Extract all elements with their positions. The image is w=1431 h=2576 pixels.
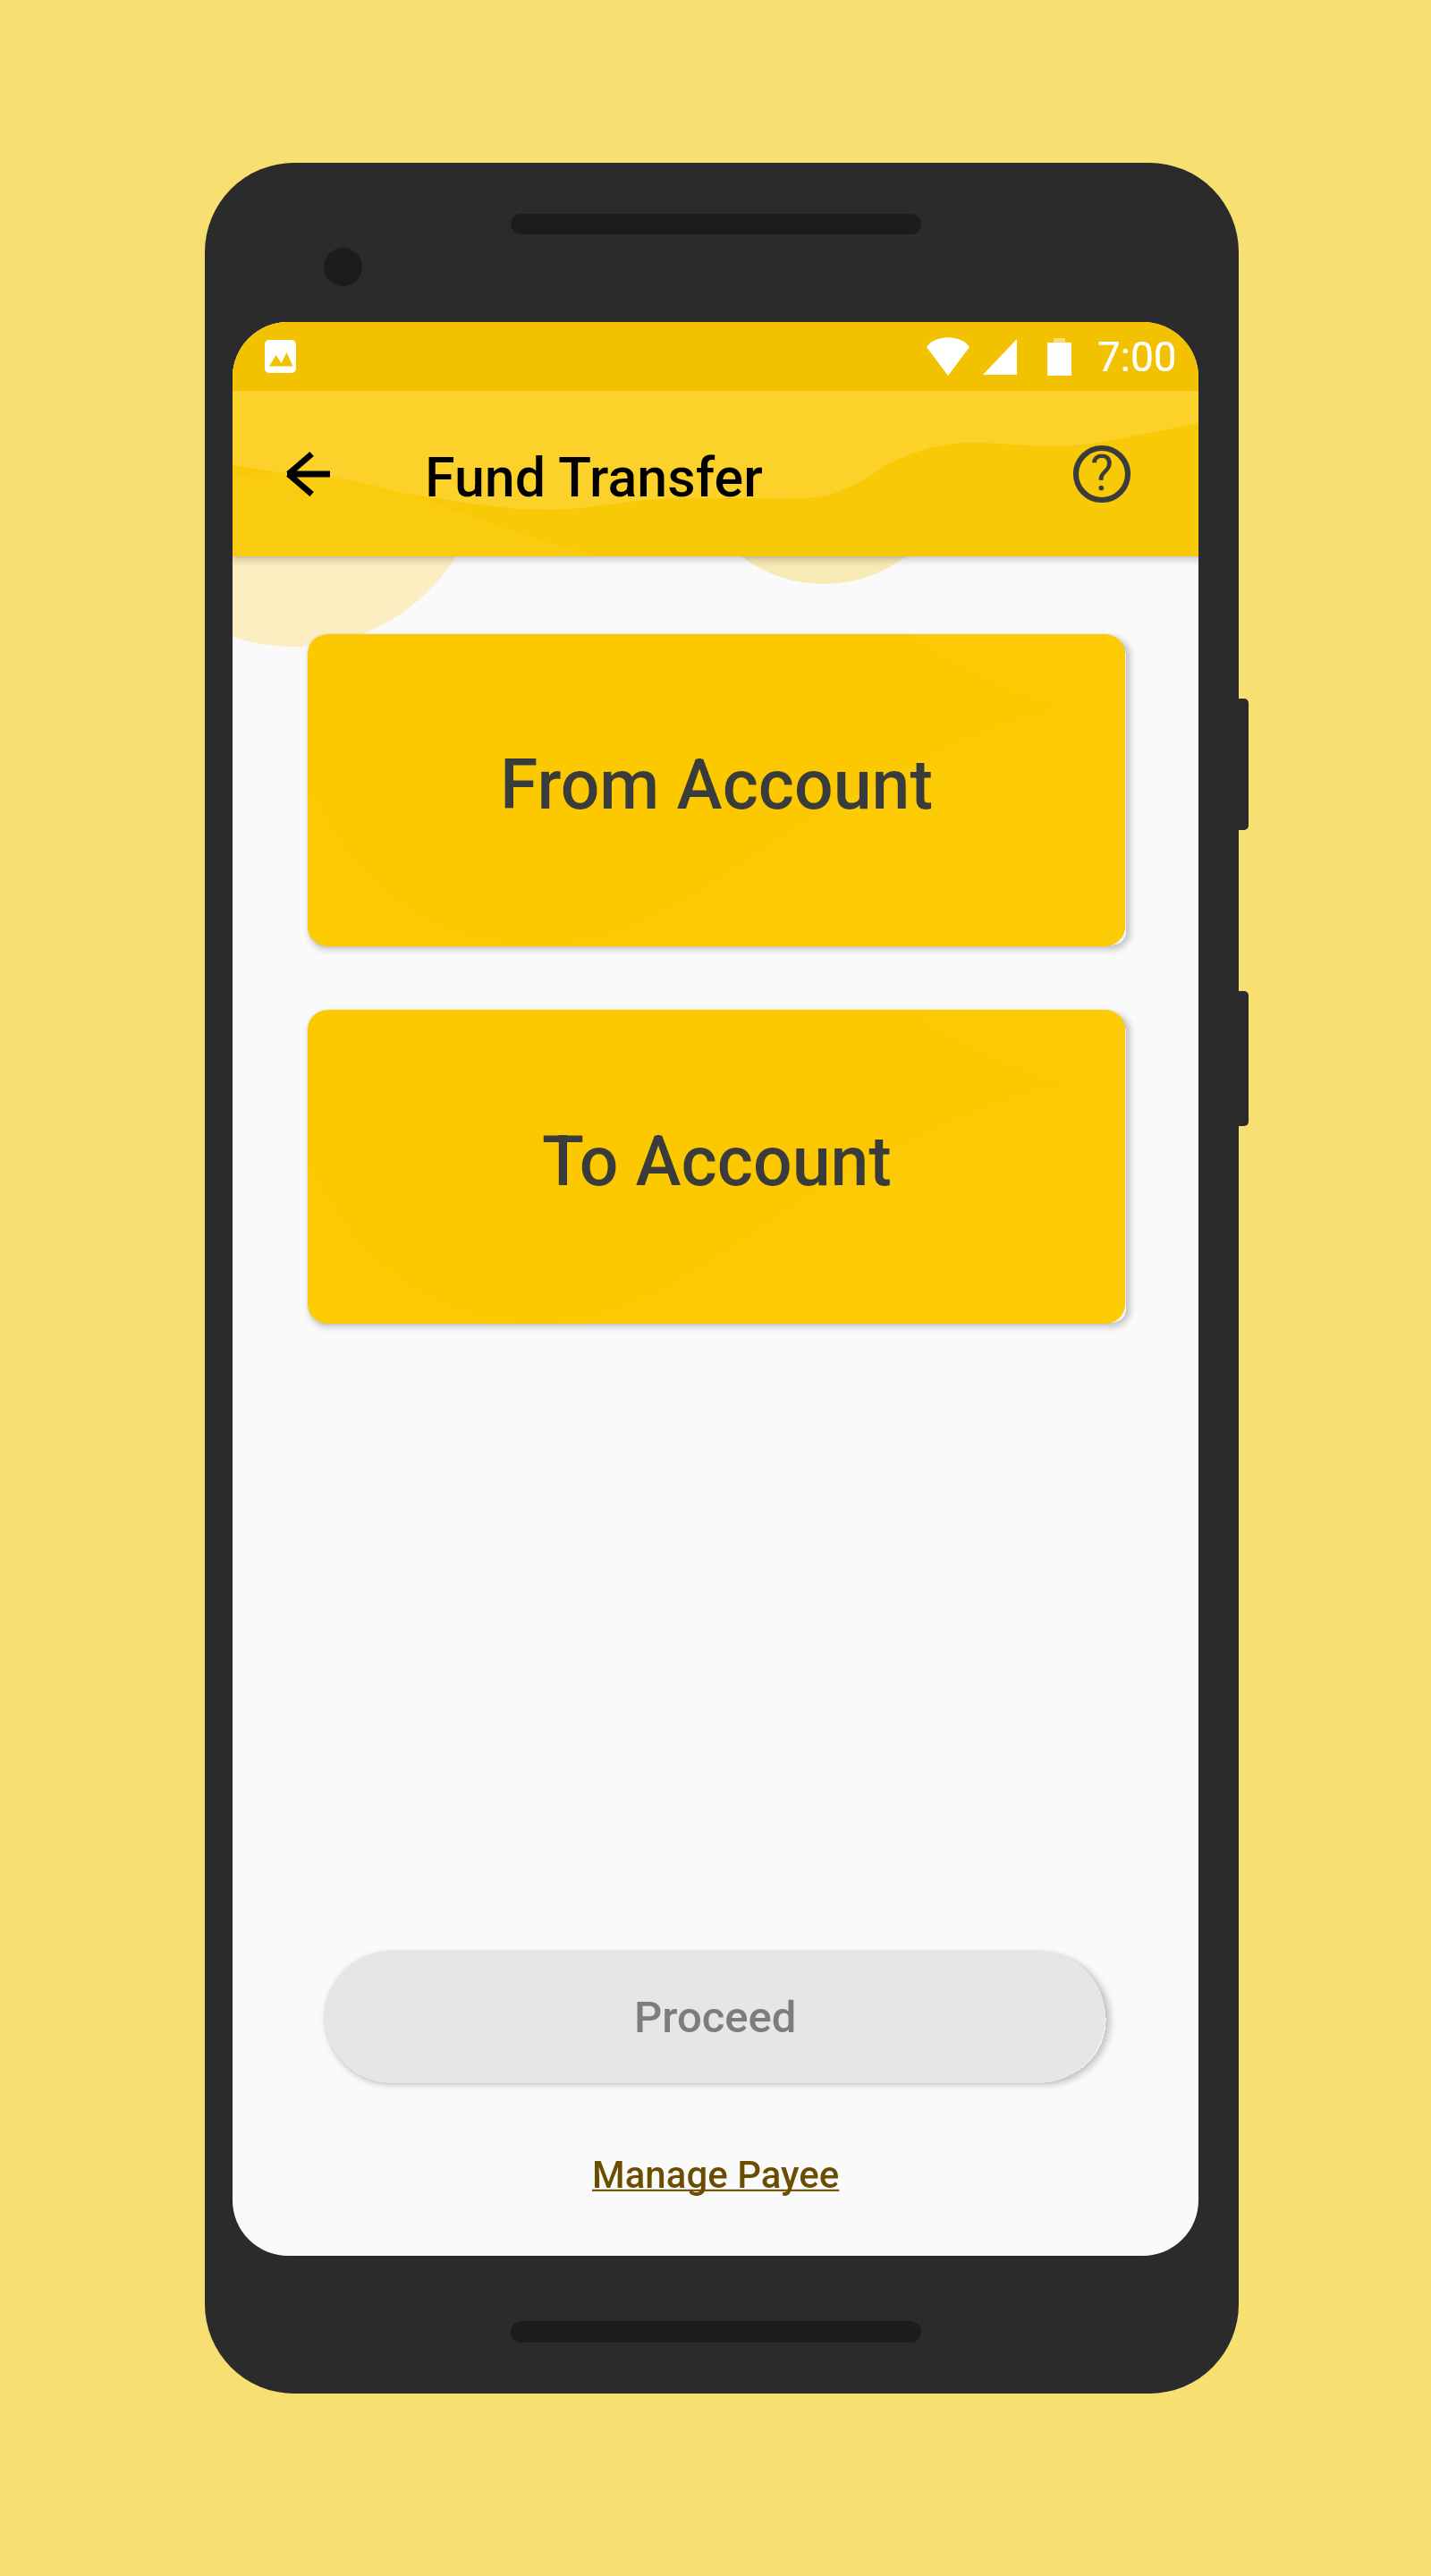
button[interactable]: Proceed bbox=[325, 1951, 1105, 2083]
staticText: 7:00 bbox=[1097, 333, 1177, 381]
staticText: To Account bbox=[542, 1122, 892, 1202]
button[interactable]: Help bbox=[1064, 436, 1139, 512]
button[interactable]: Back bbox=[266, 431, 351, 517]
staticText: Proceed bbox=[634, 1992, 797, 2043]
button[interactable]: From Account bbox=[308, 634, 1125, 946]
staticText: Fund Transfer bbox=[425, 445, 763, 509]
staticText: ? bbox=[1090, 445, 1113, 502]
staticText: From Account bbox=[500, 745, 934, 826]
button[interactable]: To Account bbox=[308, 1010, 1125, 1324]
button[interactable]: Manage Payee bbox=[592, 2153, 840, 2197]
